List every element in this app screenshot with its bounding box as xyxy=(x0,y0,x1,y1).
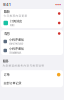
staticText: ••• xyxy=(55,2,61,7)
staticText: 消息 xyxy=(3,31,9,36)
staticText: 订单 xyxy=(3,73,9,77)
staticText: 订阅消息 xyxy=(10,19,22,23)
staticText: 9:41 xyxy=(3,2,11,7)
staticText: 最新 xyxy=(3,9,9,14)
staticText: 小程序通知 xyxy=(9,38,24,42)
staticText: 服务 xyxy=(2,59,8,63)
staticText: 小程序通知 xyxy=(9,47,24,51)
staticText: 您的订单已发货 xyxy=(9,42,23,45)
staticText: 刚刚 xyxy=(10,24,14,27)
staticText: 活动提醒信息 xyxy=(9,51,21,54)
staticText: 全部订单记录 xyxy=(3,81,21,85)
staticText: 今日推荐内容更新 xyxy=(3,14,27,18)
staticText: 为您精选的服务内容与推荐说明 xyxy=(2,64,44,67)
